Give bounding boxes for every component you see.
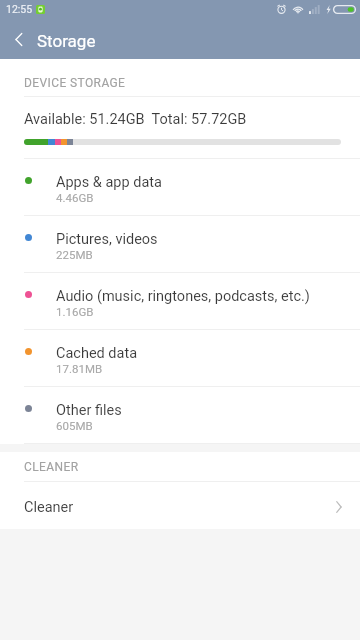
staticText: 225MB <box>56 248 93 261</box>
staticText: Cleaner <box>24 499 74 516</box>
staticText: Other files <box>56 402 122 419</box>
button[interactable]: Other files <box>0 387 360 443</box>
button[interactable]: Audio (music, ringtones, podcasts, etc.) <box>0 273 360 329</box>
staticText: Cached data <box>56 345 138 362</box>
button[interactable]: Apps & app data <box>0 159 360 215</box>
staticText: DEVICE STORAGE <box>24 76 126 90</box>
staticText: 17.81MB <box>56 362 103 375</box>
staticText: 1.16GB <box>56 305 94 318</box>
button[interactable]: Back <box>0 23 36 59</box>
staticText: Apps & app data <box>56 174 162 191</box>
staticText: Available: 51.24GB Total: 57.72GB <box>24 111 247 128</box>
button[interactable]: Pictures, videos <box>0 216 360 272</box>
staticText: Pictures, videos <box>56 231 158 248</box>
staticText: 12:55 <box>6 3 33 15</box>
button[interactable]: Cached data <box>0 330 360 386</box>
staticText: Storage <box>37 31 96 51</box>
staticText: Audio (music, ringtones, podcasts, etc.) <box>56 288 310 305</box>
staticText: CLEANER <box>24 460 79 474</box>
staticText: 605MB <box>56 419 93 432</box>
staticText: 4.46GB <box>56 191 94 204</box>
button[interactable]: Cleaner <box>0 482 360 529</box>
